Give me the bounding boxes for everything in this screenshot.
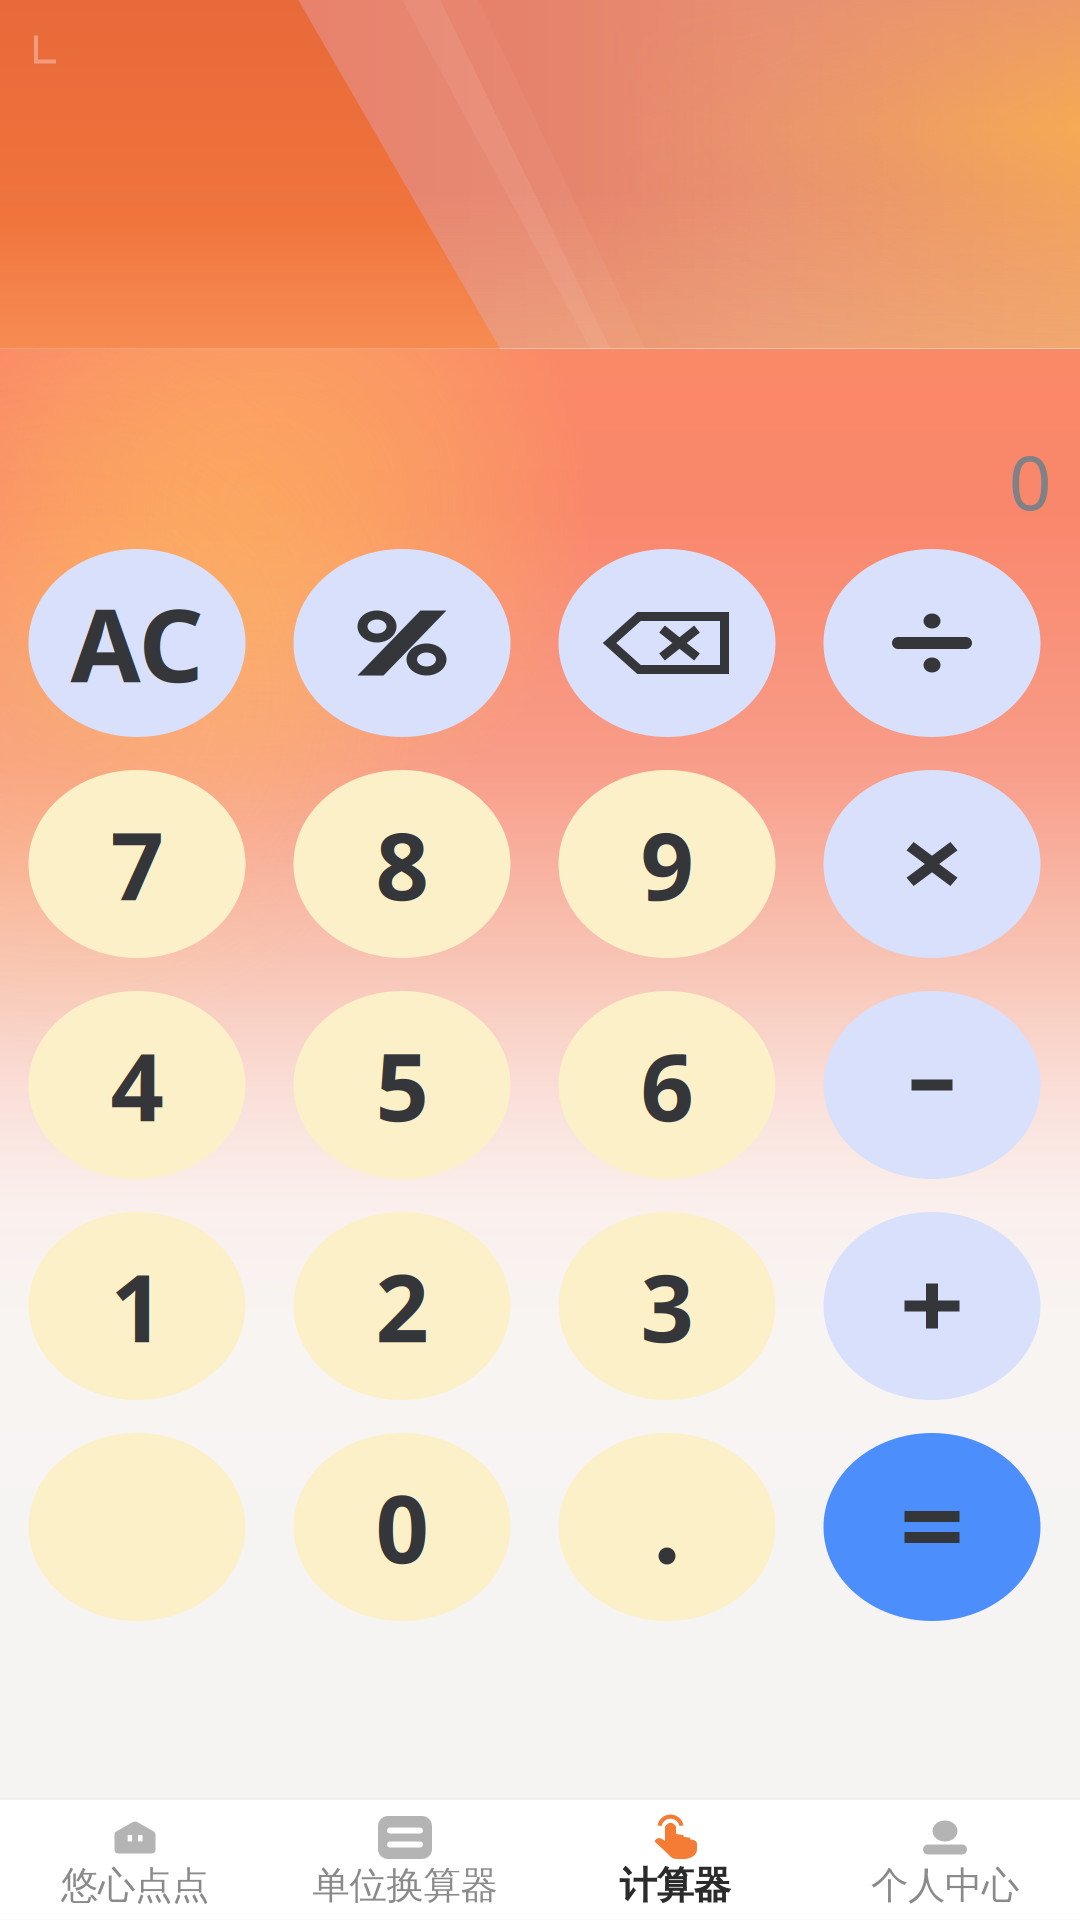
staticText: 1: [110, 1244, 163, 1368]
button[interactable]: [28, 1433, 245, 1621]
staticText: AC: [70, 576, 203, 710]
button[interactable]: 计算器: [540, 1799, 810, 1919]
staticText: 4: [110, 1023, 163, 1147]
button[interactable]: 4: [28, 991, 245, 1179]
staticText: 6: [640, 1023, 693, 1147]
staticText: 悠心点点: [61, 1863, 209, 1908]
staticText: 计算器: [619, 1863, 730, 1908]
button[interactable]: 单位换算器: [270, 1799, 540, 1919]
button[interactable]: Minus: [823, 991, 1040, 1179]
button[interactable]: 0: [293, 1433, 510, 1621]
button[interactable]: Percent: [293, 549, 510, 737]
staticText: 0: [375, 1465, 428, 1589]
button[interactable]: Equals: [823, 1433, 1040, 1621]
button[interactable]: Delete: [558, 549, 775, 737]
staticText: 9: [640, 802, 693, 926]
button[interactable]: 6: [558, 991, 775, 1179]
button[interactable]: Decimal point: [558, 1433, 775, 1621]
staticText: 8: [375, 802, 428, 926]
button[interactable]: 2: [293, 1212, 510, 1400]
staticText: 3: [640, 1244, 693, 1368]
staticText: 7: [110, 802, 163, 926]
button[interactable]: 7: [28, 770, 245, 958]
button[interactable]: 1: [28, 1212, 245, 1400]
button[interactable]: Divide: [823, 549, 1040, 737]
staticText: 0: [1008, 431, 1051, 531]
button[interactable]: 9: [558, 770, 775, 958]
button[interactable]: AC: [28, 549, 245, 737]
button[interactable]: 8: [293, 770, 510, 958]
staticText: 单位换算器: [312, 1863, 497, 1908]
staticText: 个人中心: [871, 1863, 1019, 1908]
staticText: 5: [375, 1023, 428, 1147]
button[interactable]: Plus: [823, 1212, 1040, 1400]
staticText: 2: [375, 1244, 428, 1368]
button[interactable]: 悠心点点: [0, 1799, 270, 1919]
button[interactable]: 5: [293, 991, 510, 1179]
button[interactable]: 3: [558, 1212, 775, 1400]
button[interactable]: 个人中心: [810, 1799, 1080, 1919]
button[interactable]: Multiply: [823, 770, 1040, 958]
